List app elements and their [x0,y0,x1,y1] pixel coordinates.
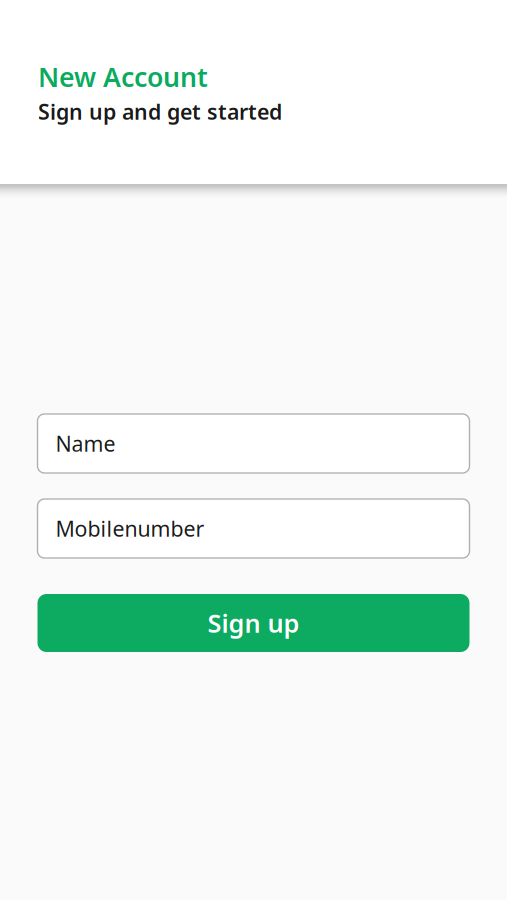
button[interactable]: Sign up [37,594,469,652]
staticText: Mobilenumber [55,514,204,543]
staticText: Sign up and get started [38,97,282,126]
staticText: Name [55,429,115,458]
button[interactable]: Mobilenumber [37,499,469,558]
staticText: Sign up [207,606,299,640]
button[interactable]: Name [37,414,469,473]
staticText: New Account [38,59,208,94]
